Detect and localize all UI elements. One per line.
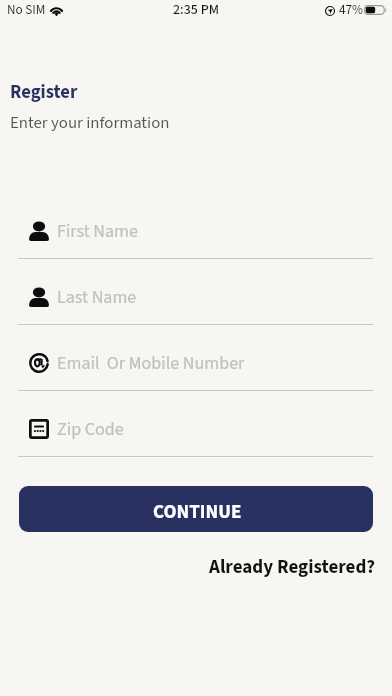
other: Person <box>29 287 49 307</box>
staticText: Zip Code <box>57 417 124 443</box>
other: Zip code <box>29 419 49 439</box>
staticText: Already Registered? <box>209 554 376 581</box>
other: Person <box>29 221 49 241</box>
staticText: Register <box>10 79 78 105</box>
staticText: CONTINUE <box>153 499 242 526</box>
staticText: 47% <box>339 0 363 19</box>
staticText: First Name <box>57 219 138 245</box>
button[interactable]: Zip code <box>0 409 392 457</box>
staticText: No SIM <box>7 0 46 19</box>
staticText: Enter your information <box>10 111 170 135</box>
button[interactable]: Person <box>0 277 392 325</box>
staticText: Last Name <box>57 285 137 311</box>
button[interactable]: Person <box>0 211 392 259</box>
staticText: 2:35 PM <box>173 0 220 20</box>
button[interactable]: Already Registered? <box>207 552 378 583</box>
other: Email <box>29 353 49 373</box>
button[interactable]: CONTINUE <box>19 486 373 532</box>
button[interactable]: Email <box>0 343 392 391</box>
staticText: Email Or Mobile Number <box>57 351 245 377</box>
